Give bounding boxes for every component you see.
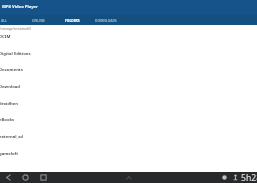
- staticText: FOLDERS: [65, 18, 80, 22]
- button[interactable]: ONLINE: [21, 15, 55, 25]
- staticText: gameloft: [0, 151, 19, 157]
- button[interactable]: droidhen: [0, 95, 257, 112]
- staticText: ONLINE: [32, 18, 45, 22]
- button[interactable]: Documents: [0, 61, 257, 78]
- staticText: droidhen: [0, 101, 18, 107]
- button[interactable]: Show hidden icons: [124, 173, 134, 183]
- staticText: /storage/emulated/0: [0, 27, 32, 31]
- staticText: eBooks: [0, 117, 15, 123]
- button[interactable]: Battery: [220, 173, 229, 182]
- button[interactable]: eBooks: [0, 111, 257, 128]
- button[interactable]: gameloft: [0, 145, 257, 162]
- button[interactable]: DCIM: [0, 28, 257, 45]
- button[interactable]: external_sd: [0, 128, 257, 145]
- staticText: external_sd: [0, 134, 23, 140]
- button[interactable]: FOLDERS: [55, 15, 89, 25]
- button[interactable]: Back: [3, 172, 14, 183]
- staticText: DOWNLOADS: [95, 18, 117, 22]
- staticText: 5h28: [241, 172, 257, 183]
- staticText: Digital Editions: [0, 51, 31, 57]
- button[interactable]: Download: [0, 78, 257, 95]
- button[interactable]: Digital Editions: [0, 45, 257, 62]
- staticText: Documents: [0, 67, 23, 73]
- staticText: MP4 Video Player: [2, 4, 38, 10]
- button[interactable]: ALL: [0, 15, 21, 25]
- button[interactable]: DOWNLOADS: [89, 15, 123, 25]
- button[interactable]: Home: [20, 172, 31, 183]
- button[interactable]: Recent apps: [38, 172, 49, 183]
- staticText: Download: [0, 84, 20, 90]
- staticText: DCIM: [0, 34, 11, 40]
- staticText: ALL: [1, 18, 7, 22]
- button[interactable]: Wi-Fi: [231, 173, 240, 182]
